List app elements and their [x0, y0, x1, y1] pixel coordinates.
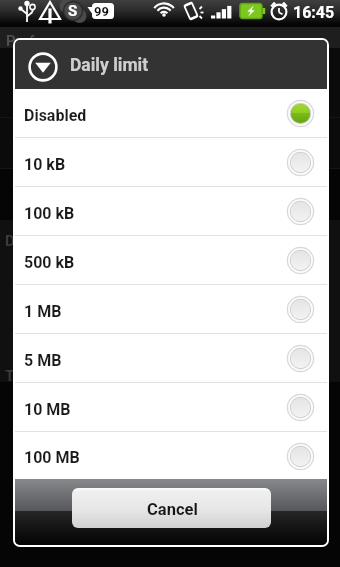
button[interactable]: 500 kB — [15, 236, 327, 284]
button[interactable]: 100 MB — [15, 432, 327, 479]
button[interactable]: 1 MB — [15, 285, 327, 333]
button[interactable]: Expand — [15, 40, 327, 89]
staticText: 1 MB — [24, 302, 62, 321]
button[interactable]: 5 MB — [15, 334, 327, 382]
staticText: 99 — [94, 4, 109, 19]
staticText: 5 MB — [24, 351, 62, 370]
button[interactable]: 10 kB — [15, 138, 327, 186]
staticText: 500 kB — [24, 253, 75, 272]
button[interactable]: 100 kB — [15, 187, 327, 235]
staticText: T — [5, 367, 15, 385]
staticText: Cancel — [147, 500, 198, 519]
button[interactable]: 10 MB — [15, 383, 327, 431]
staticText: 10 MB — [24, 400, 71, 419]
staticText: 16:45 — [293, 3, 335, 22]
other: Expand — [27, 51, 59, 83]
staticText: 10 kB — [24, 155, 66, 174]
staticText: Disabled — [24, 106, 87, 125]
button[interactable]: Disabled — [15, 89, 327, 137]
staticText: Daily limit — [70, 55, 149, 76]
staticText: 100 MB — [24, 448, 80, 467]
staticText: D — [5, 232, 15, 250]
staticText: 100 kB — [24, 204, 75, 223]
button[interactable]: Cancel — [72, 488, 271, 528]
staticText: S — [68, 2, 78, 20]
staticText: Preferences — [6, 32, 88, 50]
